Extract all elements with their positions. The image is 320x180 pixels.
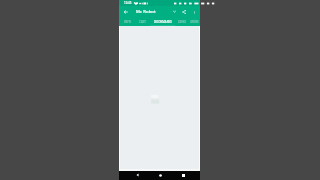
- button[interactable]: Download: [170, 7, 179, 16]
- button[interactable]: INFO: [121, 17, 134, 26]
- button[interactable]: More options: [190, 8, 198, 16]
- button[interactable]: Recent apps: [179, 171, 187, 179]
- button[interactable]: Navigate up: [121, 7, 131, 17]
- button[interactable]: MORE: [188, 17, 200, 26]
- button[interactable]: Share: [179, 7, 188, 16]
- staticText: 12:45: [124, 1, 132, 5]
- staticText: INFO: [124, 20, 131, 24]
- button[interactable]: CAST: [134, 17, 150, 26]
- staticText: Mr. Robot: [136, 8, 156, 14]
- button[interactable]: Home: [156, 171, 164, 179]
- staticText: LINKS: [178, 20, 186, 24]
- staticText: CAST: [139, 20, 146, 24]
- button[interactable]: LINKS: [175, 17, 188, 26]
- button[interactable]: Back: [133, 171, 141, 179]
- staticText: BOOKMARKS: [154, 20, 172, 24]
- staticText: MORE: [190, 20, 199, 24]
- button[interactable]: BOOKMARKS: [150, 17, 175, 26]
